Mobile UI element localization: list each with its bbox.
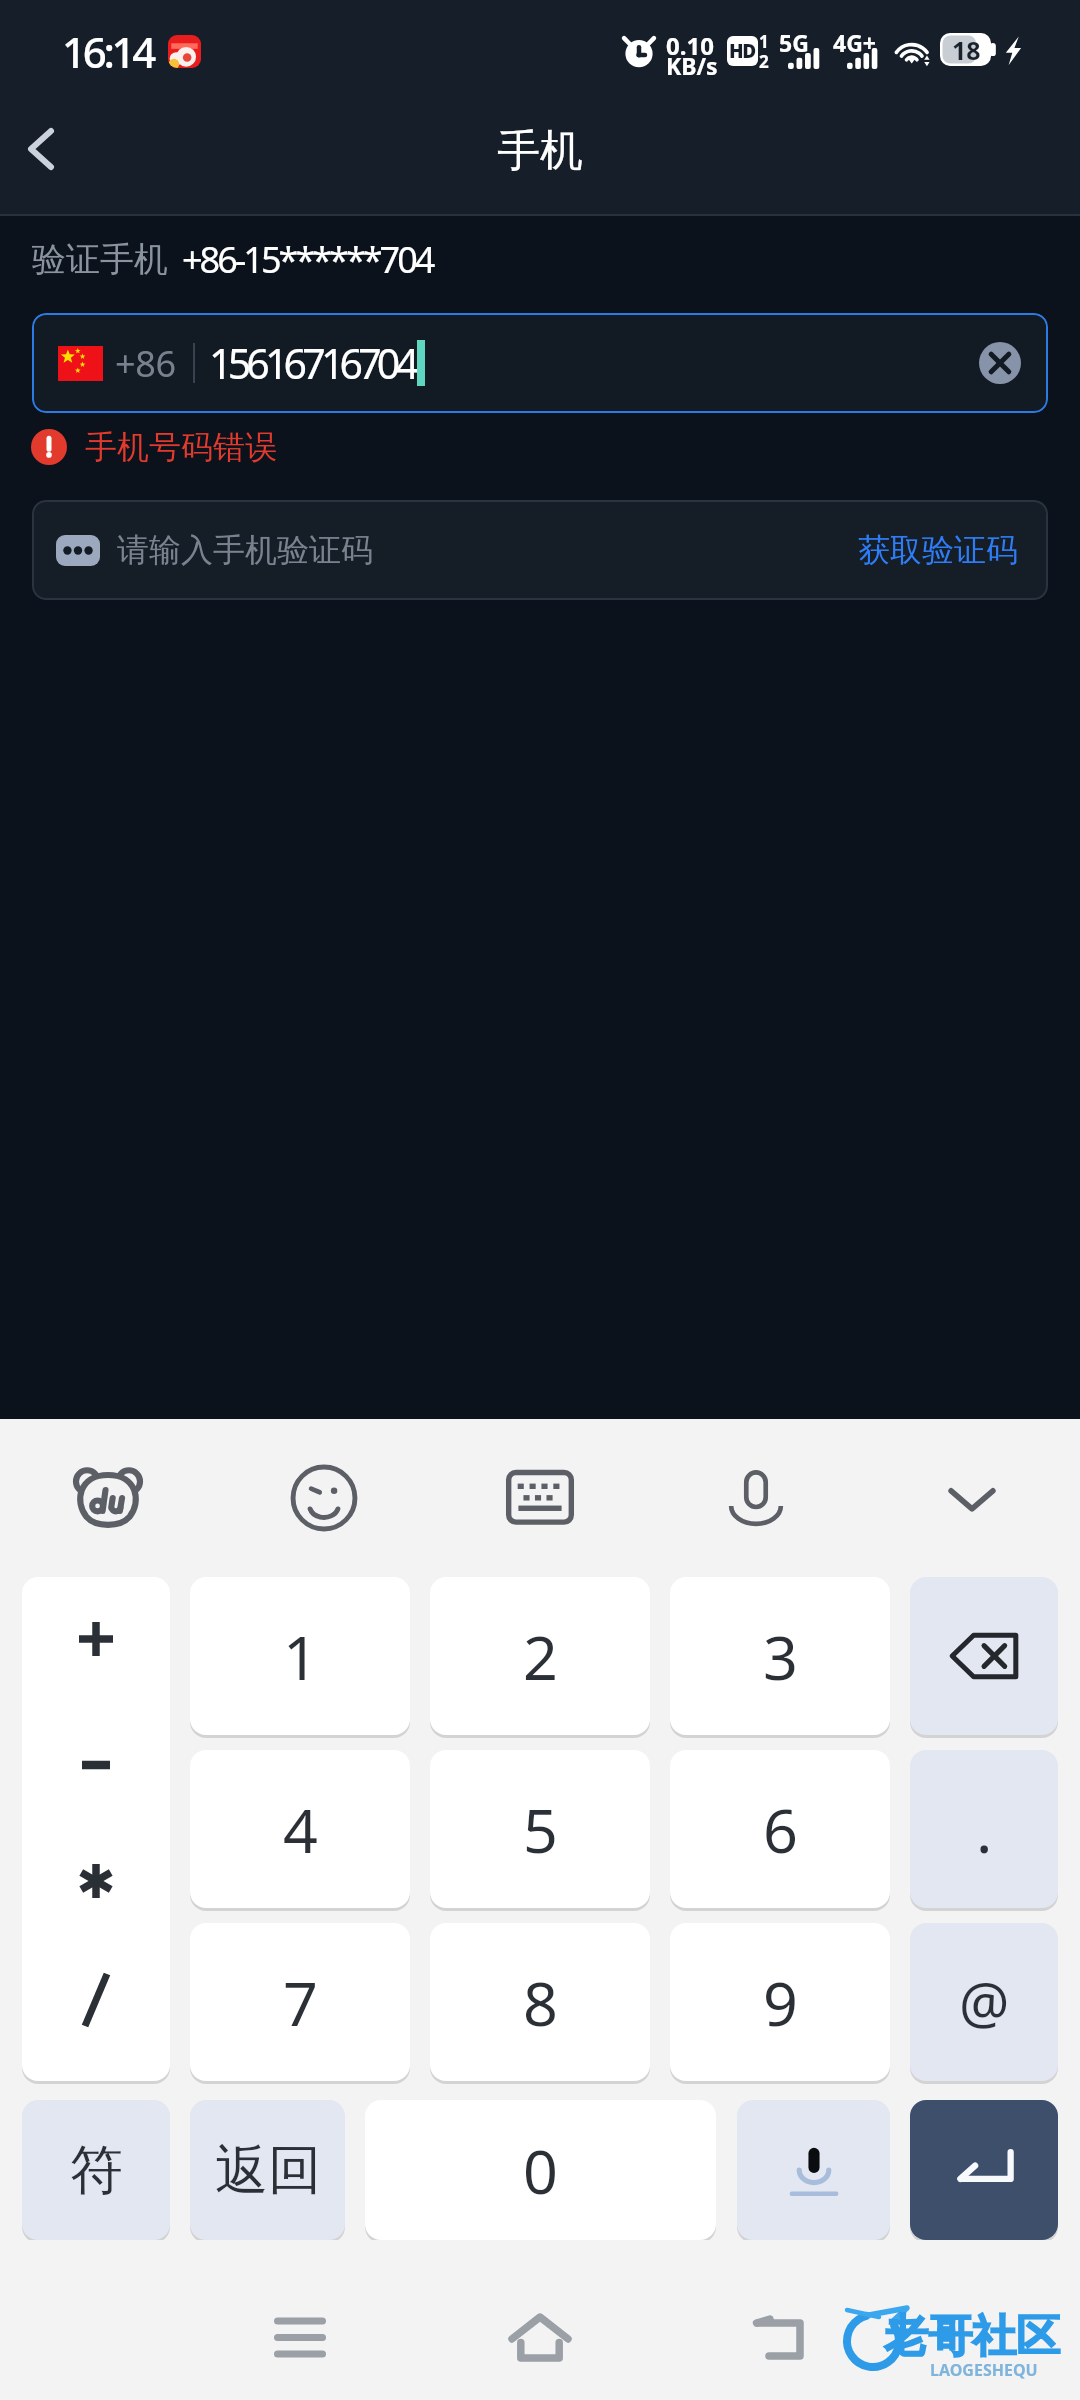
staticText: 7 <box>283 1961 318 2044</box>
staticText: 2 <box>759 50 769 73</box>
staticText: 6 <box>763 1788 798 1871</box>
staticText: 2 <box>523 1615 558 1698</box>
staticText: 5 <box>523 1788 558 1871</box>
button[interactable]: 5 <box>430 1750 650 1908</box>
staticText: HD <box>729 38 756 64</box>
staticText: 获取验证码 <box>858 530 1018 570</box>
staticText: +86 <box>115 339 176 388</box>
staticText: 15616716704 <box>209 335 415 391</box>
button[interactable]: 4 <box>190 1750 410 1908</box>
button[interactable]: 6 <box>670 1750 890 1908</box>
button[interactable]: 返回 <box>190 2100 345 2240</box>
staticText: 4G+ <box>833 27 876 58</box>
button[interactable]: 2 <box>430 1577 650 1735</box>
button[interactable]: Back <box>719 2277 839 2399</box>
staticText: . <box>976 1788 993 1871</box>
staticText: +86-15******704 <box>182 235 433 284</box>
button[interactable]: Emoji <box>216 1419 432 1577</box>
button[interactable]: Voice input <box>648 1419 864 1577</box>
staticText: @ <box>959 1964 1010 2040</box>
staticText: 0.10 <box>666 29 714 62</box>
staticText: 18 <box>952 33 981 66</box>
button[interactable]: Home <box>480 2277 600 2399</box>
button[interactable]: Recents <box>239 2277 361 2399</box>
staticText: 1 <box>283 1615 318 1698</box>
staticText: 老哥社区 <box>884 2309 1060 2364</box>
staticText: 返回 <box>215 2137 321 2204</box>
button[interactable]: Voice input <box>737 2100 890 2240</box>
staticText: 手机号码错误 <box>85 427 277 467</box>
button[interactable]: Enter <box>910 2100 1058 2240</box>
button[interactable]: 获取验证码 <box>850 514 1026 586</box>
button[interactable]: 请输入手机验证码 <box>32 500 1048 600</box>
button[interactable]: Keyboard layout <box>432 1419 648 1577</box>
button[interactable]: @ <box>910 1923 1058 2081</box>
staticText: 验证手机 <box>32 238 168 281</box>
staticText: 请输入手机验证码 <box>117 530 373 570</box>
button[interactable]: 1 <box>190 1577 410 1735</box>
staticText: 5G <box>779 27 809 58</box>
button[interactable]: Back <box>1 109 81 189</box>
button[interactable]: Clear <box>966 329 1034 397</box>
button[interactable]: 3 <box>670 1577 890 1735</box>
staticText: 9 <box>763 1961 798 2044</box>
button[interactable]: 符 <box>22 2100 170 2240</box>
button[interactable]: . <box>910 1750 1058 1908</box>
staticText: 4 <box>283 1788 318 1871</box>
button[interactable]: 7 <box>190 1923 410 2081</box>
staticText: 8 <box>523 1961 558 2044</box>
button[interactable]: Backspace <box>910 1577 1058 1735</box>
button[interactable]: +86 <box>32 313 1048 413</box>
staticText: 0 <box>523 2129 558 2212</box>
staticText: 1 <box>759 30 769 53</box>
staticText: LAOGESHEQU <box>930 2359 1038 2381</box>
staticText: 手机 <box>497 124 583 178</box>
staticText: 3 <box>763 1615 798 1698</box>
button[interactable] <box>22 1577 170 2081</box>
staticText: 符 <box>70 2137 123 2204</box>
button[interactable]: 0 <box>365 2100 716 2240</box>
button[interactable]: Hide keyboard <box>864 1419 1080 1577</box>
button[interactable]: 9 <box>670 1923 890 2081</box>
button[interactable]: 8 <box>430 1923 650 2081</box>
button[interactable]: Baidu input <box>0 1419 216 1577</box>
staticText: 16:14 <box>62 23 154 80</box>
staticText: KB/s <box>666 50 718 81</box>
